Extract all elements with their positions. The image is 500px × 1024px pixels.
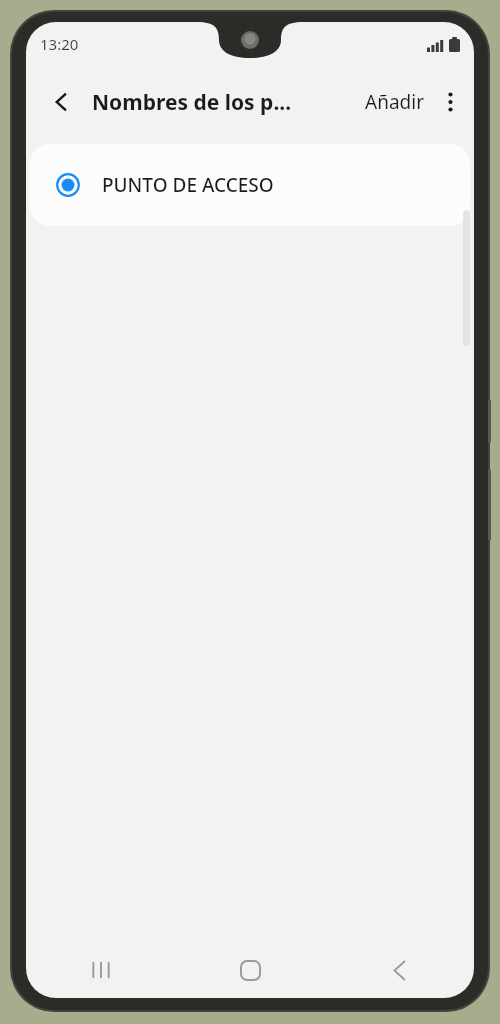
staticText: PUNTO DE ACCESO [102, 172, 274, 198]
staticText: 13:20 [40, 34, 79, 54]
button[interactable]: More options [430, 82, 470, 122]
button[interactable]: Añadir [359, 81, 430, 123]
button[interactable]: PUNTO DE ACCESO [30, 144, 470, 226]
staticText: Añadir [365, 89, 424, 115]
staticText: Nombres de los p... [92, 88, 292, 117]
button[interactable]: Recent apps [26, 942, 176, 998]
button[interactable]: Back [325, 942, 474, 998]
button[interactable]: Home [176, 942, 325, 998]
button[interactable]: Back [42, 82, 82, 122]
